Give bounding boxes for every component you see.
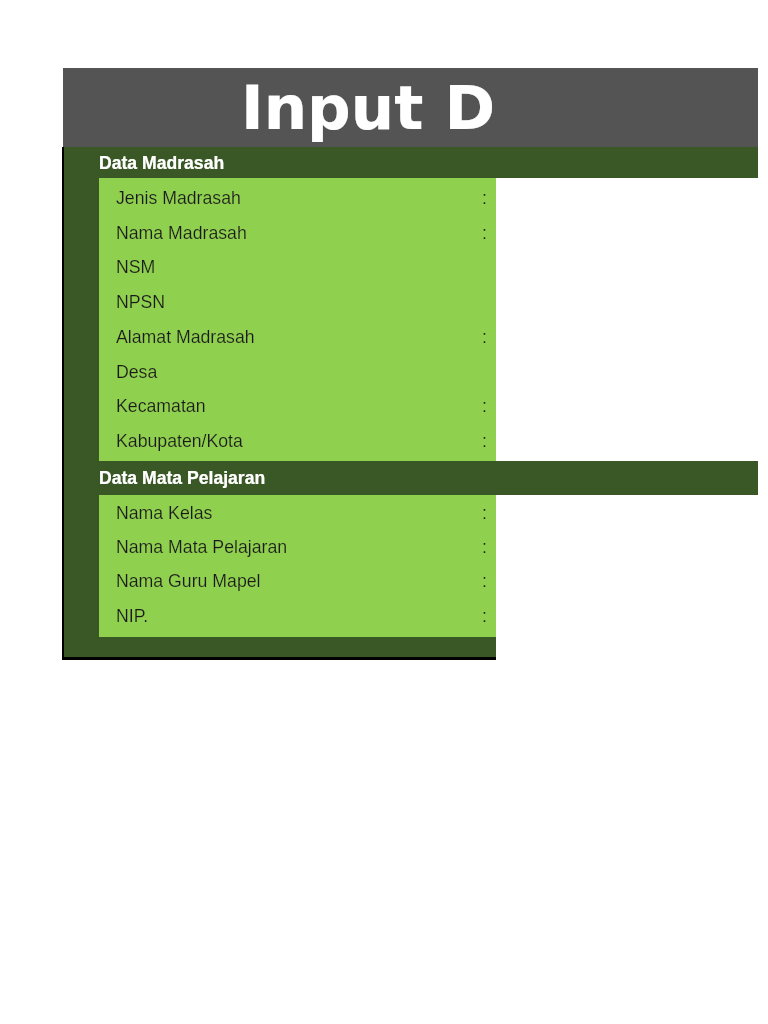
staticText: Jenis Madrasah — [116, 188, 241, 208]
staticText: Desa — [116, 362, 158, 382]
staticText: Nama Madrasah — [116, 223, 247, 243]
staticText: Kabupaten/Kota — [116, 431, 243, 451]
button[interactable]: Jenis Madrasah — [99, 180, 496, 215]
staticText: : — [482, 537, 487, 557]
button[interactable]: Input Data Nilai — [63, 68, 758, 147]
staticText: Data Madrasah — [99, 153, 225, 173]
button[interactable]: NIP. — [99, 598, 496, 633]
button[interactable]: Kecamatan — [99, 389, 496, 423]
button[interactable]: Data Mata Pelajaran — [62, 461, 758, 495]
staticText: Alamat Madrasah — [116, 327, 255, 347]
staticText: NPSN — [116, 292, 166, 312]
staticText: : — [482, 606, 487, 626]
button[interactable]: Nama Madrasah — [99, 215, 496, 250]
staticText: NSM — [116, 257, 156, 277]
staticText: Nama Guru Mapel — [116, 571, 261, 591]
button[interactable]: Kabupaten/Kota — [99, 423, 496, 458]
staticText: Nama Mata Pelajaran — [116, 537, 288, 557]
staticText: : — [482, 396, 487, 416]
button[interactable]: Alamat Madrasah — [99, 319, 496, 354]
staticText: : — [482, 503, 487, 523]
staticText: : — [482, 223, 487, 243]
staticText: : — [482, 327, 487, 347]
button[interactable]: NPSN — [99, 284, 496, 319]
button[interactable]: Desa — [99, 354, 496, 389]
button[interactable]: NSM — [99, 250, 496, 284]
staticText: Data Mata Pelajaran — [99, 468, 266, 488]
staticText: Kecamatan — [116, 396, 206, 416]
button[interactable]: Nama Guru Mapel — [99, 564, 496, 598]
staticText: : — [482, 188, 487, 208]
staticText: Nama Kelas — [116, 503, 213, 523]
button[interactable]: Nama Mata Pelajaran — [99, 530, 496, 564]
staticText: : — [482, 571, 487, 591]
button[interactable]: Nama Kelas — [99, 496, 496, 530]
staticText: NIP. — [116, 606, 149, 626]
button[interactable]: Data Madrasah — [62, 147, 758, 178]
staticText: Input Data Nilai — [241, 72, 496, 143]
staticText: : — [482, 431, 487, 451]
